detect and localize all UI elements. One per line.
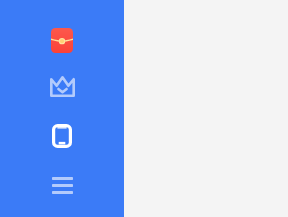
button[interactable]: My device (0, 116, 124, 156)
button[interactable]: Menu (0, 166, 124, 204)
button[interactable]: Red packet (0, 17, 124, 63)
button[interactable]: Membership (0, 66, 124, 106)
